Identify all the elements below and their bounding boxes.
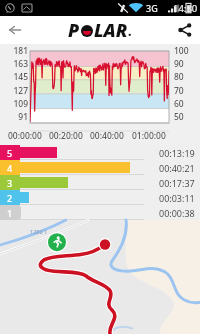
staticText: 00:00:38 bbox=[159, 207, 195, 219]
staticText: 00:13:19 bbox=[159, 147, 195, 159]
staticText: 00:40:00 bbox=[90, 130, 124, 142]
staticText: 2 bbox=[7, 192, 13, 204]
staticText: 91 bbox=[18, 111, 28, 123]
button[interactable]: 3 bbox=[0, 175, 200, 190]
staticText: 100 bbox=[174, 45, 189, 57]
staticText: 60 bbox=[174, 98, 184, 110]
button[interactable]: 5 bbox=[0, 145, 200, 160]
staticText: 181 bbox=[13, 45, 28, 57]
staticText: 5 bbox=[7, 147, 13, 159]
staticText: 1 bbox=[7, 207, 13, 219]
staticText: LAR bbox=[94, 18, 128, 43]
staticText: 00:40:21 bbox=[159, 162, 195, 174]
button[interactable]: Route map bbox=[0, 220, 200, 334]
staticText: 127 bbox=[13, 85, 28, 97]
button[interactable]: Back bbox=[0, 16, 30, 44]
staticText: 3 bbox=[7, 177, 13, 189]
staticText: 4 bbox=[7, 162, 13, 174]
staticText: 70 bbox=[174, 85, 184, 97]
staticText: 3G bbox=[146, 2, 158, 14]
staticText: 109 bbox=[13, 98, 28, 110]
button[interactable]: 4 bbox=[0, 160, 200, 175]
staticText: P bbox=[68, 18, 80, 43]
staticText: 01:00:00 bbox=[132, 130, 166, 142]
staticText: 00:00:00 bbox=[8, 130, 42, 142]
staticText: 1280 1 bbox=[30, 228, 48, 235]
button[interactable]: 2 bbox=[0, 190, 200, 205]
staticText: 00:20:00 bbox=[49, 130, 83, 142]
staticText: . bbox=[128, 23, 132, 39]
staticText: 90 bbox=[174, 58, 184, 70]
staticText: 163 bbox=[13, 58, 28, 70]
staticText: 14:30 bbox=[173, 2, 198, 15]
staticText: 00:03:11 bbox=[159, 192, 195, 204]
button[interactable]: 1 bbox=[0, 205, 200, 220]
button[interactable]: Share bbox=[170, 16, 200, 44]
staticText: 80 bbox=[174, 71, 184, 83]
staticText: 145 bbox=[13, 71, 28, 83]
staticText: 00:17:37 bbox=[159, 177, 195, 189]
staticText: 50 bbox=[174, 111, 184, 123]
